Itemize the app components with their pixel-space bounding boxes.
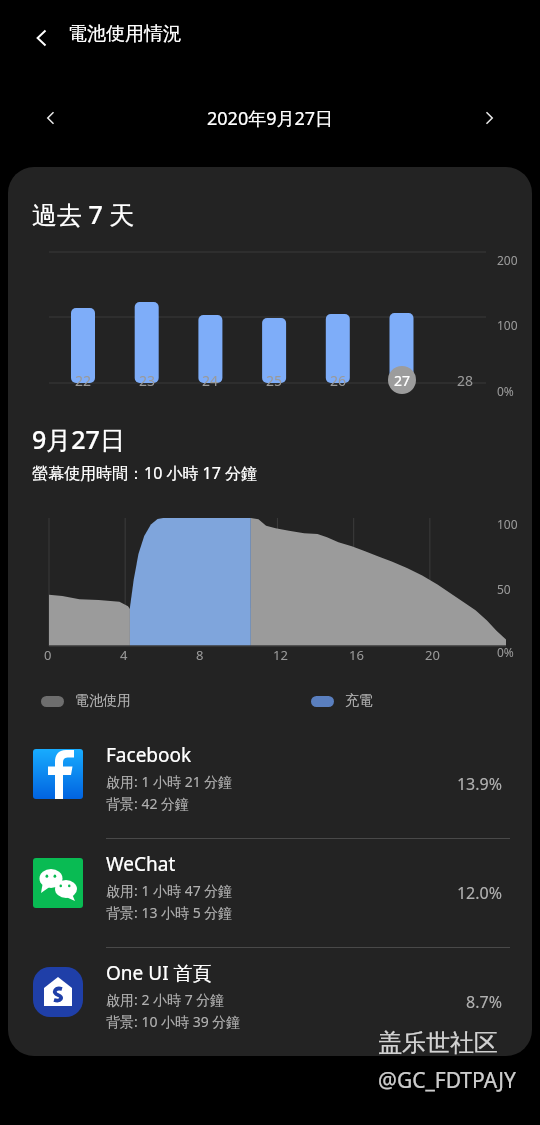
button[interactable]: Facebook [8,730,532,838]
staticText: 20 [425,646,440,664]
button[interactable]: 24 [194,364,226,396]
staticText: 50 [497,581,511,597]
button[interactable]: WeChat [8,839,532,947]
button[interactable]: 23 [131,364,163,396]
staticText: 9月27日 [32,422,125,456]
staticText: 4 [120,646,128,664]
staticText: 螢幕使用時間：10 小時 17 分鐘 [32,462,258,484]
staticText: 100 [497,516,518,532]
staticText: 0% [497,644,514,660]
staticText: 100 [497,317,518,333]
staticText: 啟用: 1 小時 21 分鐘 [106,772,233,791]
staticText: 25 [266,371,283,390]
staticText: WeChat [106,851,176,877]
staticText: 24 [202,371,219,390]
staticText: 0% [497,383,514,399]
staticText: 盖乐世社区 [378,1028,498,1058]
staticText: 12 [273,646,288,664]
staticText: 背景: 10 小時 39 分鐘 [106,1012,241,1031]
button[interactable]: Back [18,14,66,62]
staticText: 16 [349,646,364,664]
staticText: 28 [457,371,474,390]
button[interactable]: 22 [67,364,99,396]
staticText: 0 [44,646,52,664]
staticText: 12.0% [432,882,502,904]
button[interactable]: 28 [449,364,481,396]
staticText: 電池使用 [75,692,131,710]
button[interactable]: Next day [464,93,514,143]
staticText: 27 [394,371,411,390]
staticText: 8.7% [432,991,502,1013]
staticText: 啟用: 1 小時 47 分鐘 [106,881,233,900]
staticText: 13.9% [432,773,502,795]
staticText: 200 [497,252,518,268]
button[interactable]: Previous day [26,93,76,143]
staticText: 背景: 42 分鐘 [106,794,190,813]
staticText: 電池使用情況 [68,22,182,46]
button[interactable]: 25 [258,364,290,396]
staticText: 26 [330,371,347,390]
staticText: 背景: 13 小時 5 分鐘 [106,903,233,922]
staticText: 啟用: 2 小時 7 分鐘 [106,990,225,1009]
staticText: 過去 7 天 [32,197,135,231]
staticText: 22 [75,371,92,390]
button[interactable]: 26 [322,364,354,396]
button[interactable]: One UI 首頁 [8,948,532,1056]
staticText: One UI 首頁 [106,960,212,986]
button[interactable]: 27 [386,364,418,396]
staticText: 23 [139,371,156,390]
staticText: @GC_FDTPAJY [378,1066,516,1095]
staticText: 2020年9月27日 [207,106,334,131]
staticText: 充電 [345,692,373,710]
staticText: 8 [196,646,204,664]
staticText: Facebook [106,742,192,768]
